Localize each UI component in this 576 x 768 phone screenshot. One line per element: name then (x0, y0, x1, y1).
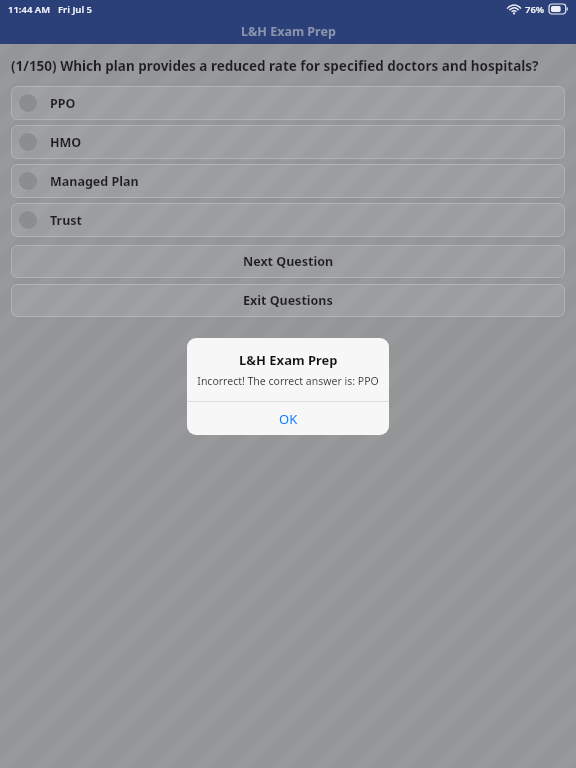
button[interactable]: Exit Questions (11, 284, 565, 317)
other: Battery 76 percent (549, 4, 568, 14)
staticText: L&H Exam Prep (239, 351, 338, 369)
staticText: Exit Questions (243, 292, 333, 309)
other: Wi-Fi (507, 4, 521, 15)
staticText: Fri Jul 5 (58, 3, 92, 16)
staticText: Incorrect! The correct answer is: PPO (197, 374, 379, 388)
button[interactable]: PPO (11, 86, 565, 120)
staticText: L&H Exam Prep (241, 23, 336, 40)
staticText: PPO (50, 95, 76, 112)
button[interactable]: HMO (11, 125, 565, 159)
staticText: 11:44 AM (8, 3, 51, 16)
staticText: Next Question (243, 253, 334, 270)
button[interactable]: OK (187, 402, 389, 435)
button[interactable]: Trust (11, 203, 565, 237)
staticText: HMO (50, 134, 82, 151)
staticText: OK (279, 410, 298, 428)
button[interactable]: Next Question (11, 245, 565, 278)
staticText: (1/150) Which plan provides a reduced ra… (11, 57, 539, 75)
staticText: Trust (50, 212, 83, 229)
staticText: 76% (525, 3, 545, 16)
button[interactable]: Managed Plan (11, 164, 565, 198)
staticText: Managed Plan (50, 173, 139, 190)
